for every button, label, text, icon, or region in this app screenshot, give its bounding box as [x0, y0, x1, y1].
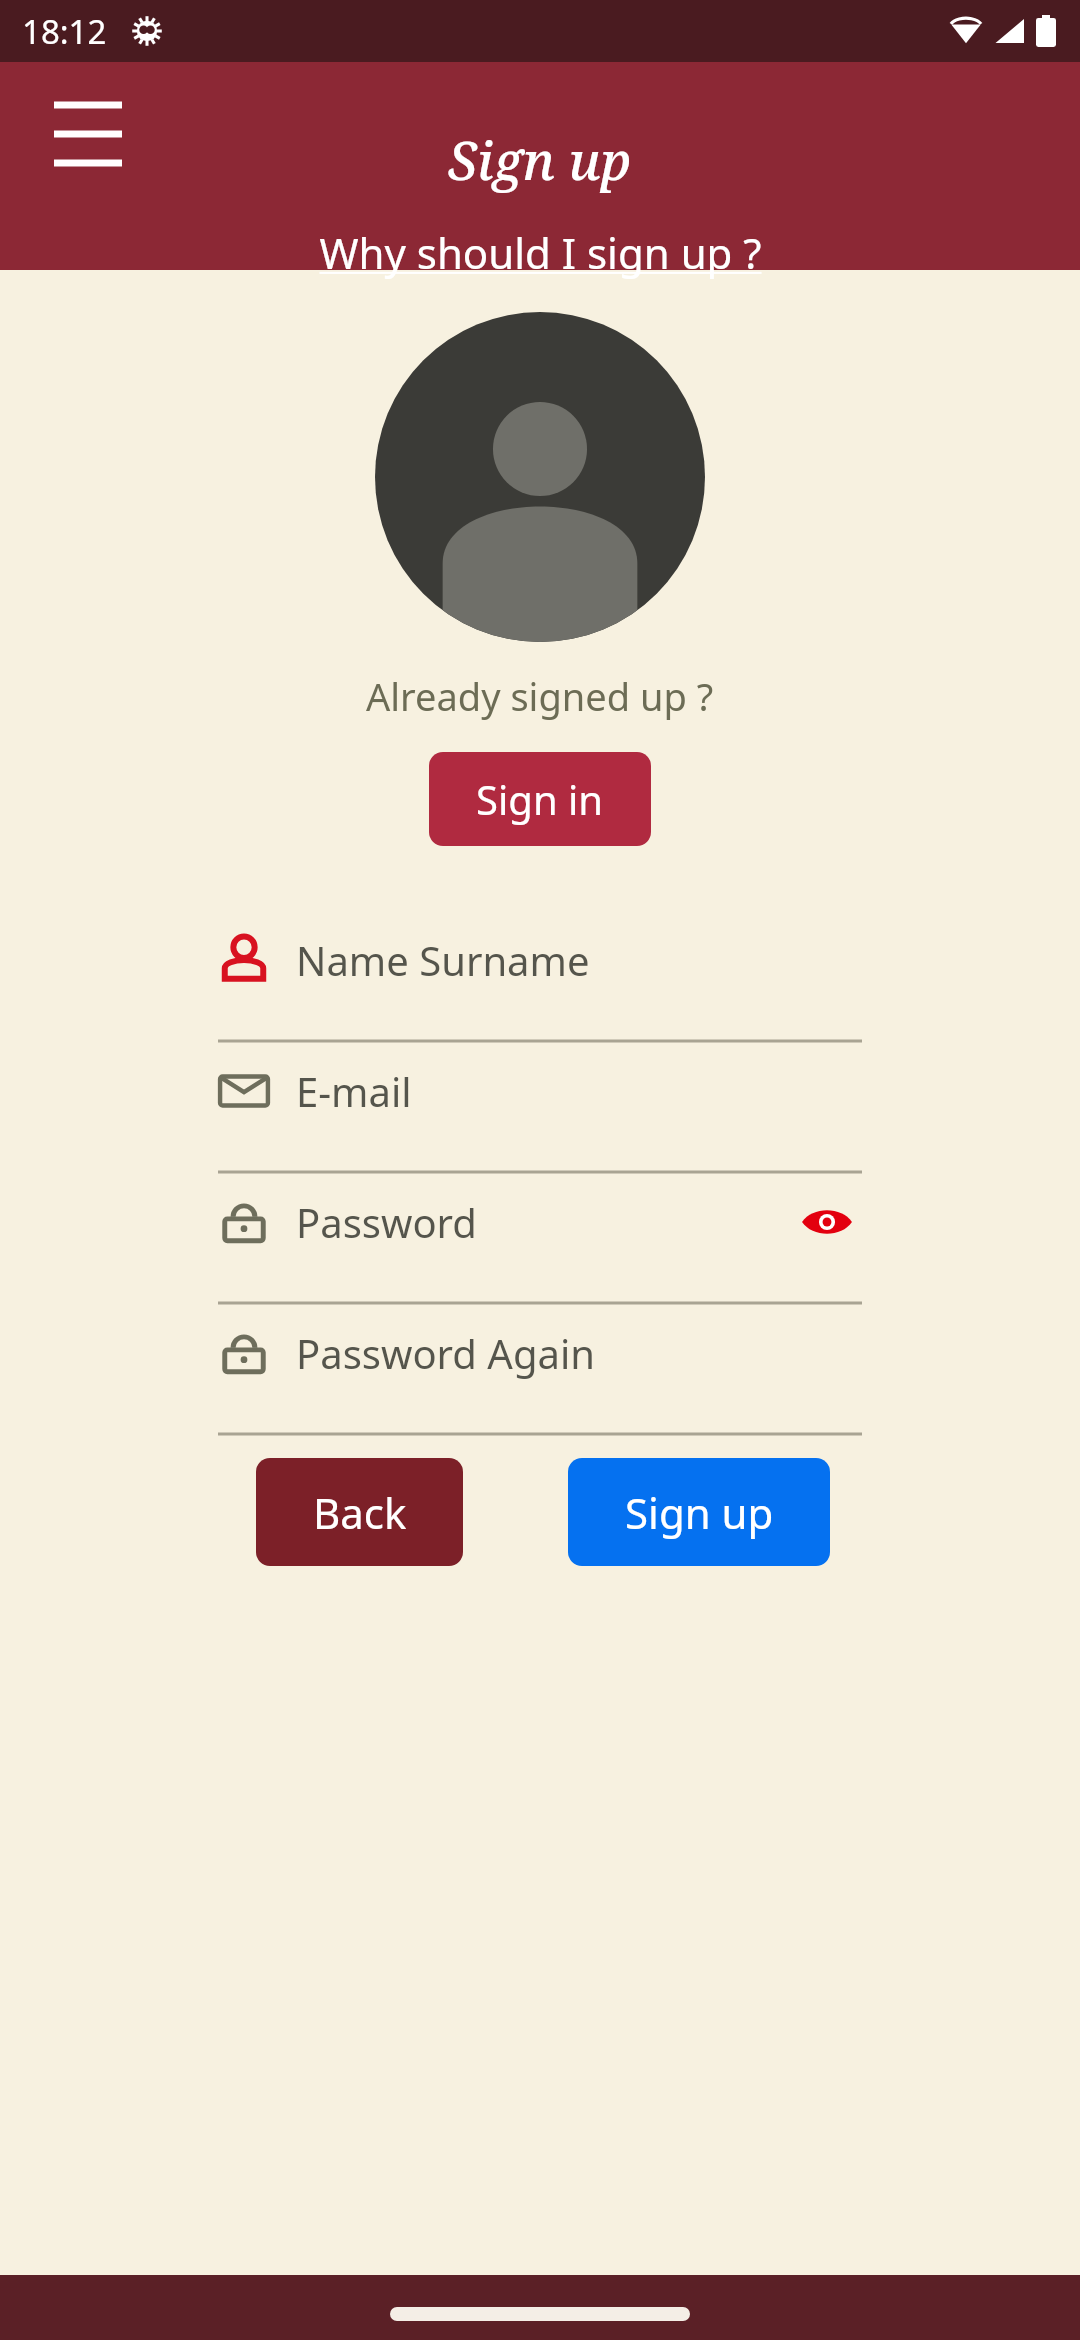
button[interactable]: Password Again — [218, 1305, 862, 1436]
button[interactable]: Sign in — [429, 752, 651, 846]
staticText: Sign up — [625, 1484, 774, 1541]
staticText: Sign up — [448, 124, 632, 195]
button[interactable]: Open navigation menu — [28, 74, 148, 194]
button[interactable]: Password — [218, 1174, 862, 1305]
staticText: E-mail — [296, 1064, 412, 1118]
staticText: Password Again — [296, 1326, 595, 1380]
staticText: Sign in — [476, 772, 604, 826]
staticText: Password — [296, 1195, 477, 1249]
staticText: Back — [313, 1484, 407, 1541]
staticText: Name Surname — [296, 933, 590, 987]
staticText: Already signed up ? — [366, 670, 714, 722]
button[interactable]: Sign up — [568, 1458, 830, 1566]
button[interactable]: Why should I sign up ? — [311, 222, 770, 283]
button[interactable]: Name Surname — [218, 912, 862, 1043]
staticText: 18:12 — [22, 9, 107, 54]
button[interactable]: Show password — [792, 1187, 862, 1257]
button[interactable]: E-mail — [218, 1043, 862, 1174]
button[interactable]: Back — [256, 1458, 463, 1566]
staticText: Why should I sign up ? — [319, 224, 762, 281]
